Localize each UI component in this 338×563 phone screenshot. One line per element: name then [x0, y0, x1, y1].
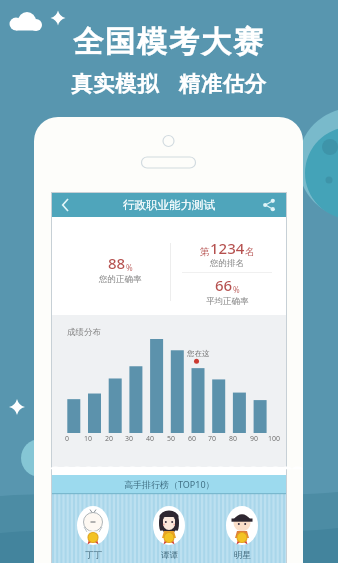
staticText: 60 — [184, 434, 200, 444]
staticText: % — [233, 284, 240, 295]
staticText: 明星 — [234, 550, 251, 561]
staticText: 行政职业能力测试 — [123, 198, 215, 212]
staticText: 0 — [59, 434, 75, 444]
staticText: 谭谭 — [161, 550, 178, 561]
button[interactable]: 谭谭 — [147, 506, 191, 561]
staticText: 20 — [101, 434, 117, 444]
staticText: 100 — [266, 434, 282, 444]
staticText: 80 — [225, 434, 241, 444]
staticText: % — [126, 262, 133, 273]
staticText: 70 — [204, 434, 220, 444]
staticText: 您的正确率 — [99, 274, 142, 285]
staticText: 10 — [80, 434, 96, 444]
staticText: 30 — [121, 434, 137, 444]
staticText: 90 — [246, 434, 262, 444]
button[interactable]: Back — [54, 193, 76, 217]
staticText: 高手排行榜（TOP10） — [124, 478, 215, 490]
staticText: 平均正确率 — [206, 296, 249, 307]
staticText: 您的排名 — [210, 258, 244, 269]
staticText: 50 — [163, 434, 179, 444]
staticText: 40 — [142, 434, 158, 444]
staticText: 66 — [215, 275, 233, 295]
staticText: 第 — [200, 245, 210, 258]
staticText: 成绩分布 — [67, 327, 101, 338]
button[interactable]: 明星 — [220, 506, 264, 561]
staticText: 丁丁 — [85, 550, 102, 561]
staticText: 1234 — [210, 238, 245, 258]
button[interactable]: Share — [258, 193, 280, 217]
button[interactable]: 丁丁 — [71, 506, 115, 561]
staticText: 您在这 — [187, 349, 210, 358]
staticText: 真实模拟 精准估分 — [0, 69, 338, 98]
staticText: 名 — [245, 245, 255, 258]
staticText: 88 — [108, 253, 126, 273]
staticText: 全国模考大赛 — [0, 23, 338, 61]
